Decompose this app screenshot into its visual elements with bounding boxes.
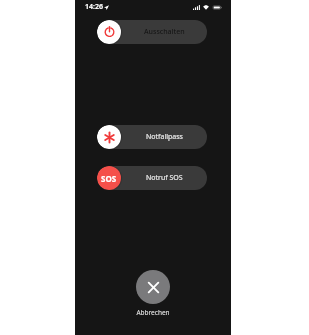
button[interactable]: Notfallpass bbox=[97, 125, 207, 149]
staticText: Notfallpass bbox=[146, 132, 183, 142]
button[interactable]: Notruf SOS bbox=[97, 166, 207, 190]
staticText: SOS bbox=[101, 173, 117, 184]
button[interactable]: Abbrechen bbox=[127, 270, 179, 317]
staticText: 14:26 bbox=[85, 2, 103, 12]
staticText: Abbrechen bbox=[136, 308, 170, 317]
button[interactable]: Ausschalten bbox=[97, 20, 207, 44]
staticText: Notruf SOS bbox=[146, 173, 183, 183]
staticText: Ausschalten bbox=[144, 27, 185, 37]
